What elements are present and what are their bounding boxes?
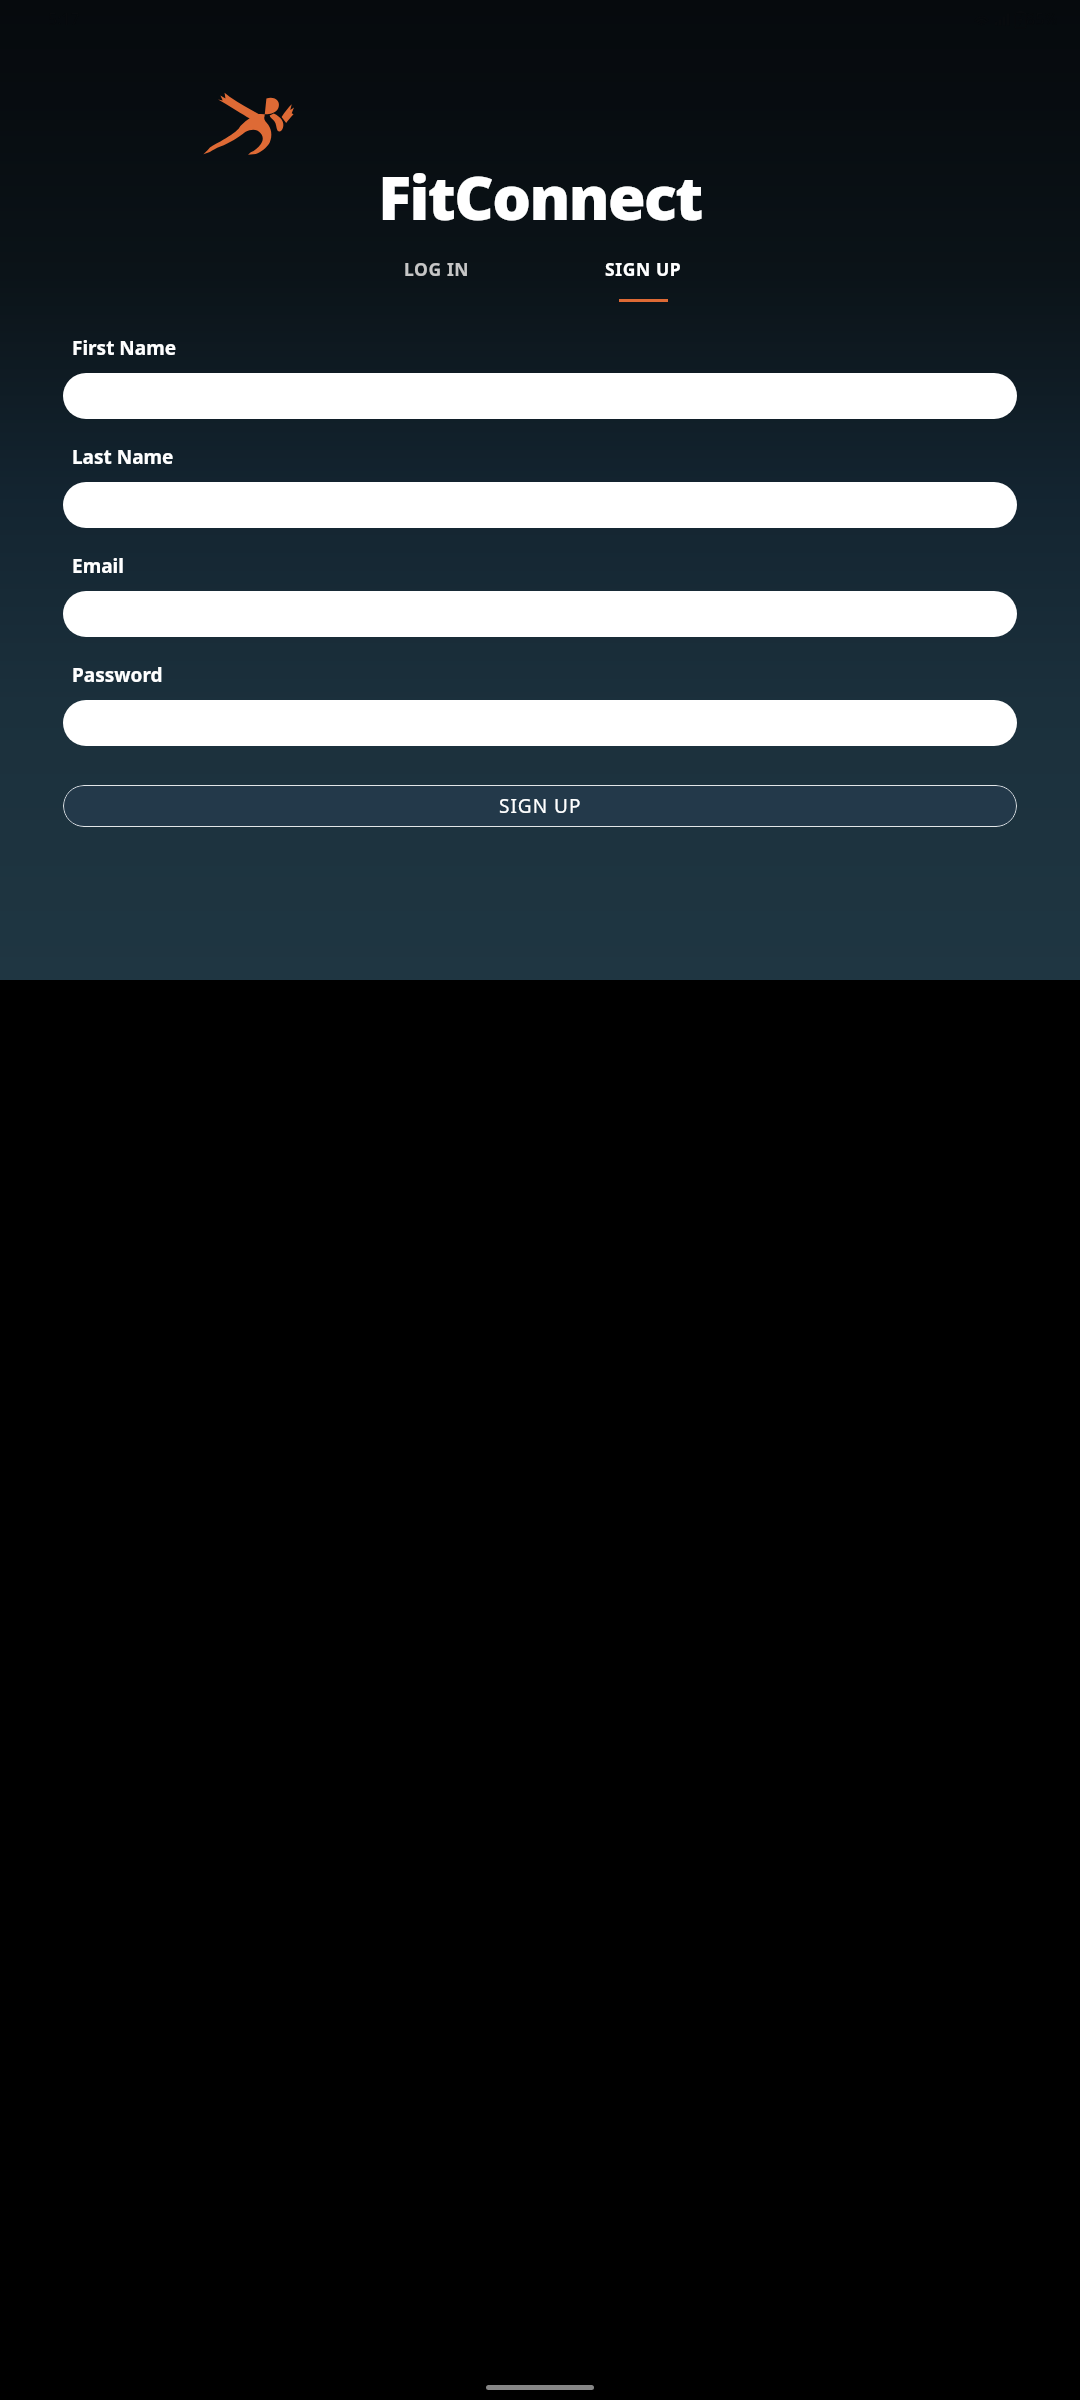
button[interactable]: LOG IN [344, 251, 530, 287]
staticText: LOG IN [404, 257, 470, 281]
button[interactable]: Last Name [63, 482, 1017, 528]
button[interactable]: Email [63, 591, 1017, 637]
staticText: First Name [72, 335, 177, 361]
button[interactable]: Password [63, 700, 1017, 746]
staticText: Last Name [72, 444, 174, 470]
staticText: Email [72, 553, 124, 579]
staticText: SIGN UP [605, 257, 682, 281]
button[interactable]: SIGN UP [63, 785, 1017, 827]
button[interactable]: SIGN UP [550, 251, 736, 302]
staticText: Password [72, 662, 163, 688]
staticText: FitConnect [378, 155, 702, 238]
button[interactable]: First Name [63, 373, 1017, 419]
staticText: SIGN UP [499, 793, 582, 819]
